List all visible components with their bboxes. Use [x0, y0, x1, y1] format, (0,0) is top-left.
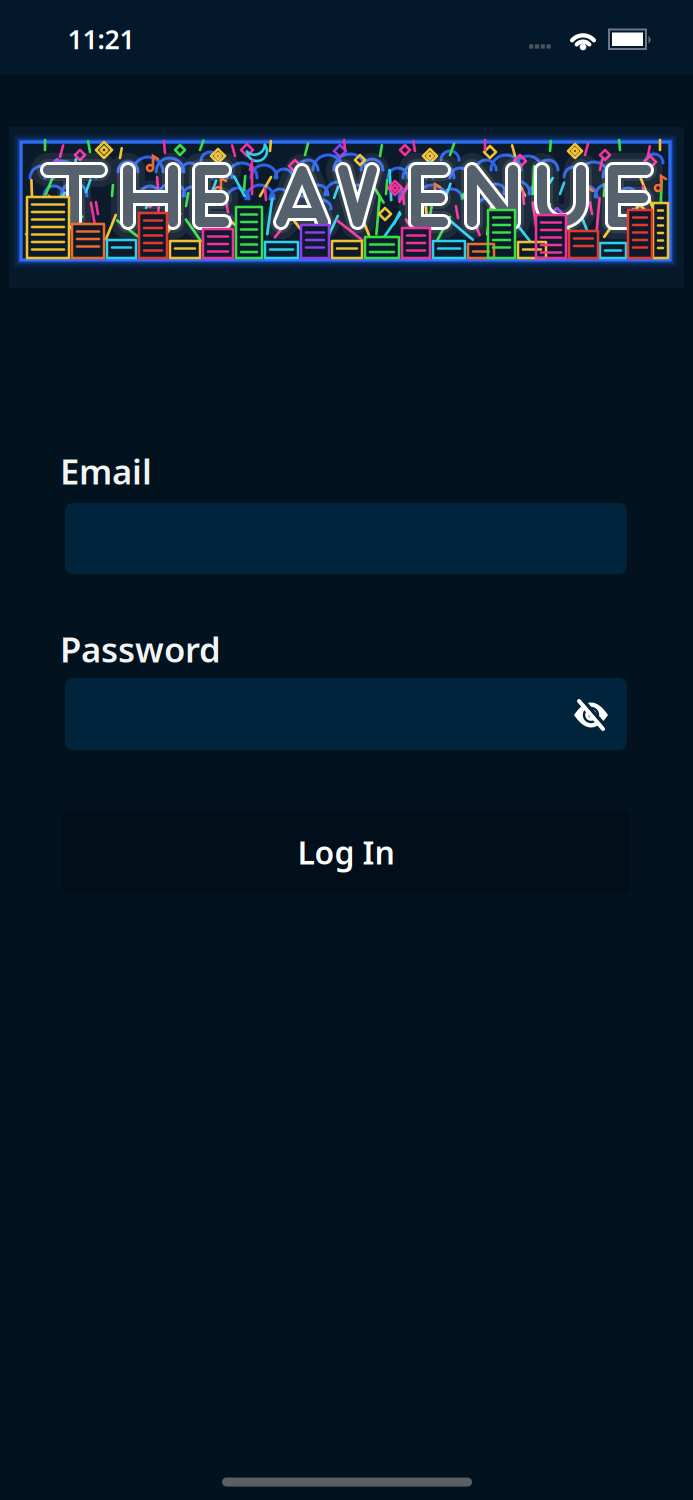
staticText: Log In	[297, 831, 394, 873]
staticText: Email	[60, 448, 152, 494]
button[interactable]	[222, 1477, 472, 1486]
button[interactable]	[569, 693, 613, 737]
button[interactable]	[65, 678, 627, 750]
staticText: Password	[60, 626, 221, 672]
button[interactable]: Log In	[62, 810, 630, 894]
staticText: 11:21	[67, 21, 134, 57]
